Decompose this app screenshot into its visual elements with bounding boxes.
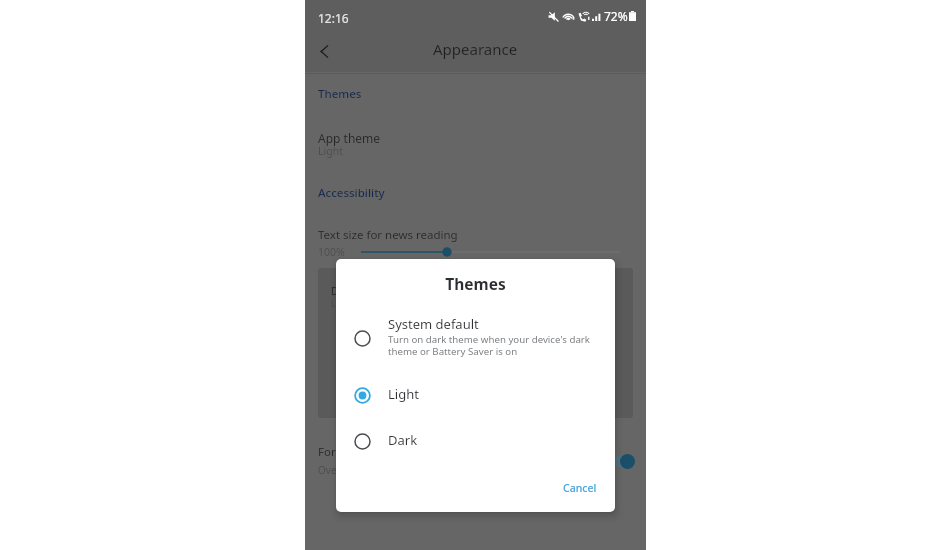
staticText: Force dark theme — [318, 444, 413, 460]
button[interactable]: Force dark theme — [305, 440, 646, 481]
button[interactable]: App theme — [305, 126, 646, 165]
staticText: Turn on dark theme when your device's da… — [388, 333, 590, 358]
button[interactable]: Dark — [336, 423, 615, 459]
staticText: Themes — [318, 86, 362, 102]
staticText: Appearance — [433, 39, 518, 59]
staticText: 100% — [318, 245, 345, 259]
button[interactable]: Navigate up — [310, 37, 338, 65]
staticText: Light — [318, 144, 343, 158]
staticText: Light — [388, 385, 419, 403]
staticText: App theme — [318, 130, 381, 146]
staticText: System default — [388, 315, 479, 333]
button[interactable]: System default — [336, 315, 615, 361]
staticText: 12:16 — [318, 10, 349, 26]
button[interactable]: Cancel — [551, 473, 609, 503]
staticText: Dummy headline for preview — [331, 284, 467, 298]
staticText: Override colours in articles — [318, 463, 445, 477]
staticText: Themes — [336, 273, 615, 294]
staticText: 72% — [604, 8, 628, 24]
staticText: Lorem ipsum dolor sit amet — [331, 297, 448, 309]
button[interactable]: Light — [336, 377, 615, 413]
staticText: Text size for news reading — [318, 227, 458, 243]
staticText: Cancel — [563, 481, 597, 495]
staticText: Dark — [388, 431, 418, 449]
staticText: Accessibility — [318, 185, 385, 201]
